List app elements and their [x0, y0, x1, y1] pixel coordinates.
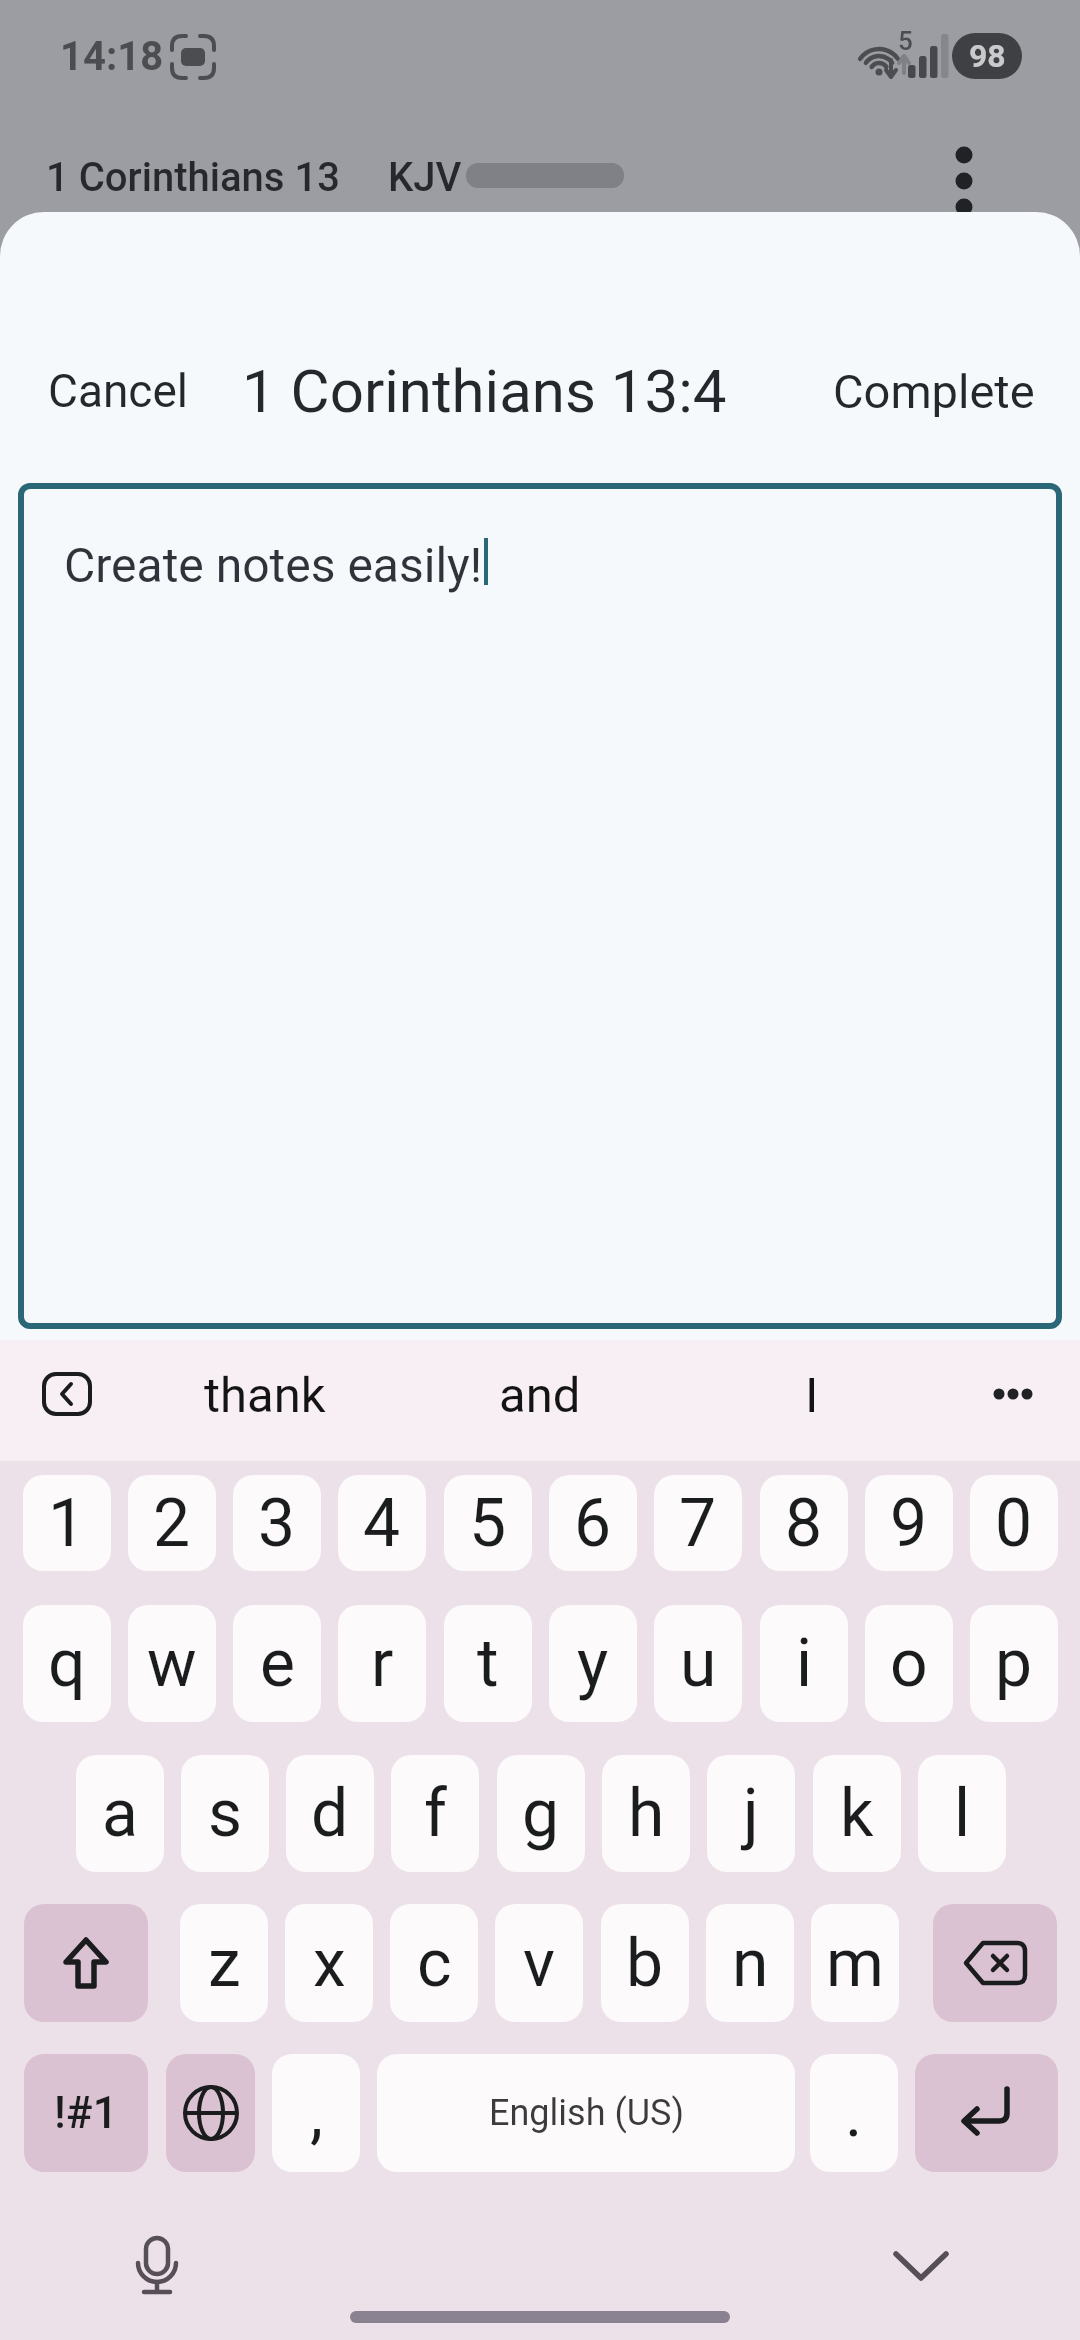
button[interactable]: l [918, 1755, 1006, 1872]
staticText: and [499, 1367, 581, 1424]
staticText: . [845, 2075, 863, 2152]
staticText: 9 [890, 1485, 928, 1562]
button[interactable] [948, 144, 980, 214]
button[interactable] [24, 1904, 148, 2022]
button[interactable]: English (US) [377, 2054, 795, 2172]
staticText: !#1 [54, 2087, 118, 2139]
button[interactable]: 7 [654, 1475, 742, 1571]
button[interactable]: h [602, 1755, 690, 1872]
staticText: 6 [574, 1485, 612, 1562]
button[interactable]: y [549, 1605, 637, 1722]
button[interactable]: j [707, 1755, 795, 1872]
button[interactable]: 4 [338, 1475, 426, 1571]
staticText: l [954, 1775, 971, 1852]
button[interactable]: v [495, 1904, 583, 2022]
staticText: 1 [48, 1485, 86, 1562]
button[interactable]: and [440, 1358, 640, 1432]
staticText: x [313, 1925, 346, 2002]
button[interactable]: !#1 [24, 2054, 148, 2172]
staticText: 8 [785, 1485, 823, 1562]
button[interactable]: k [813, 1755, 901, 1872]
button[interactable]: 9 [865, 1475, 953, 1571]
staticText: y [577, 1625, 609, 1702]
button[interactable]: 1 [23, 1475, 111, 1571]
staticText: v [523, 1925, 555, 2002]
staticText: s [208, 1775, 243, 1852]
staticText: j [743, 1775, 759, 1852]
button[interactable]: s [181, 1755, 269, 1872]
button[interactable]: d [286, 1755, 374, 1872]
staticText: i [796, 1625, 813, 1702]
staticText: c [417, 1925, 452, 2002]
staticText: 7 [679, 1485, 717, 1562]
button[interactable]: . [810, 2054, 898, 2172]
button[interactable]: a [76, 1755, 164, 1872]
button[interactable]: g [497, 1755, 585, 1872]
button[interactable]: q [23, 1605, 111, 1722]
staticText: m [826, 1925, 884, 2002]
staticText: e [260, 1625, 295, 1702]
button[interactable]: c [390, 1904, 478, 2022]
staticText: q [48, 1625, 86, 1702]
button[interactable]: o [865, 1605, 953, 1722]
button[interactable]: p [970, 1605, 1058, 1722]
staticText: w [147, 1625, 197, 1702]
button[interactable]: 2 [128, 1475, 216, 1571]
button[interactable]: f [391, 1755, 479, 1872]
staticText: h [628, 1775, 665, 1852]
staticText: n [732, 1925, 769, 2002]
button[interactable]: 5 [444, 1475, 532, 1571]
button[interactable]: n [706, 1904, 794, 2022]
button[interactable]: b [601, 1904, 689, 2022]
button[interactable] [991, 1372, 1047, 1416]
button[interactable]: t [444, 1605, 532, 1722]
staticText: 5 [469, 1485, 507, 1562]
button[interactable] [42, 1372, 92, 1416]
staticText: I [805, 1367, 819, 1424]
staticText: 0 [995, 1485, 1033, 1562]
staticText: u [680, 1625, 717, 1702]
staticText: t [477, 1625, 499, 1702]
button[interactable] [892, 2246, 950, 2290]
button[interactable]: m [811, 1904, 899, 2022]
staticText: KJV [388, 154, 462, 201]
staticText: k [840, 1775, 874, 1852]
button[interactable]: 3 [233, 1475, 321, 1571]
button[interactable]: 8 [760, 1475, 848, 1571]
button[interactable]: Complete [805, 356, 1035, 426]
button[interactable]: 6 [549, 1475, 637, 1571]
button[interactable] [130, 2236, 184, 2300]
button[interactable] [933, 1904, 1057, 2022]
staticText: 14:18 [60, 33, 164, 80]
staticText: p [995, 1625, 1033, 1702]
button[interactable]: i [760, 1605, 848, 1722]
button[interactable]: e [233, 1605, 321, 1722]
button[interactable]: r [338, 1605, 426, 1722]
staticText: a [102, 1775, 138, 1852]
button[interactable]: x [285, 1904, 373, 2022]
button[interactable]: u [654, 1605, 742, 1722]
staticText: Cancel [48, 364, 189, 418]
button[interactable]: Cancel [48, 356, 189, 426]
staticText: b [626, 1925, 664, 2002]
staticText: English (US) [489, 2092, 684, 2134]
staticText: , [310, 2075, 323, 2152]
staticText: thank [204, 1367, 326, 1424]
staticText: o [890, 1625, 928, 1702]
button[interactable] [915, 2054, 1058, 2172]
button[interactable]: w [128, 1605, 216, 1722]
button[interactable]: I [712, 1358, 912, 1432]
staticText: 2 [153, 1485, 191, 1562]
button[interactable]: 0 [970, 1475, 1058, 1571]
staticText: z [208, 1925, 241, 2002]
button[interactable]: thank [165, 1358, 365, 1432]
button[interactable] [166, 2054, 255, 2172]
button[interactable]: z [180, 1904, 268, 2022]
staticText: 1 Corinthians 13:4 [242, 356, 727, 426]
staticText: Complete [833, 364, 1035, 419]
staticText: d [311, 1775, 349, 1852]
button[interactable]: , [272, 2054, 360, 2172]
staticText: Create notes easily! [64, 537, 483, 593]
button[interactable] [18, 483, 1062, 1329]
staticText: 1 Corinthians 13 [46, 154, 340, 201]
